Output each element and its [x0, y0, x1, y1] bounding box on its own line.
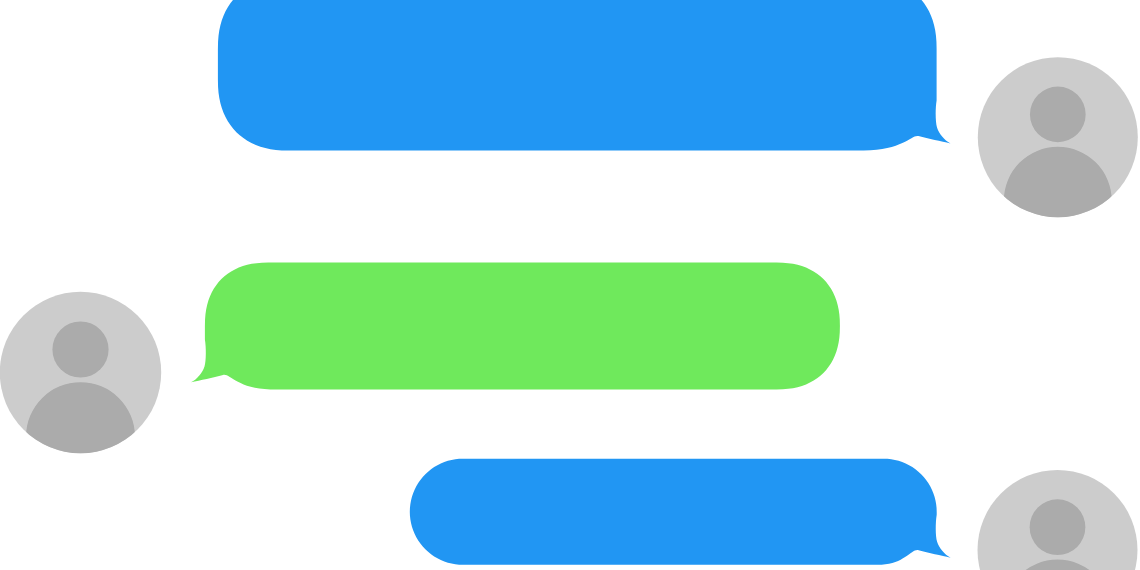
button[interactable]: Chat conversation	[0, 0, 1140, 570]
